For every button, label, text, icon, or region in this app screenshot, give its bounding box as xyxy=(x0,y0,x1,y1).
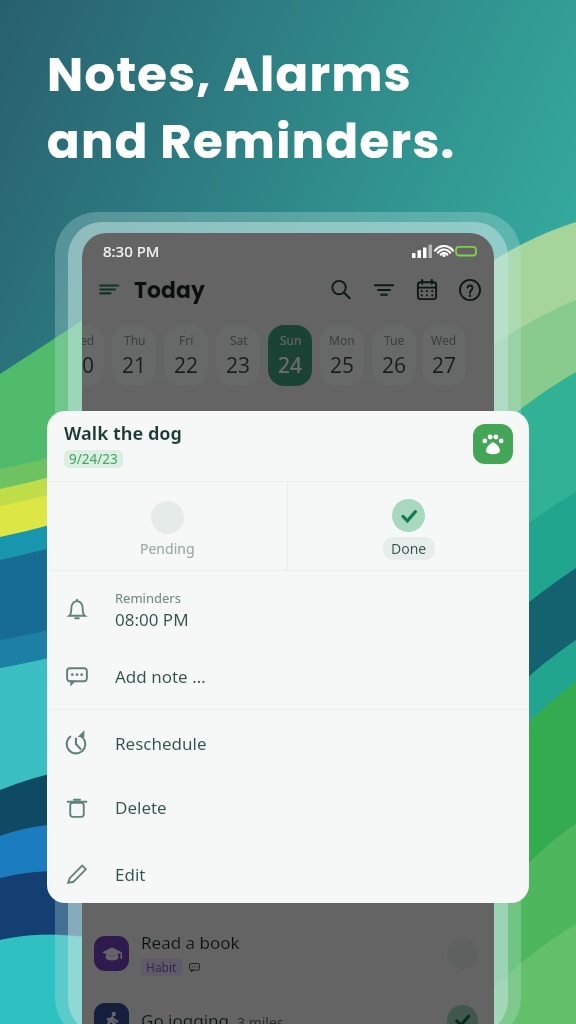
button[interactable]: Mon xyxy=(320,325,364,386)
button[interactable]: Wed xyxy=(422,325,466,386)
staticText: 9/24/23 xyxy=(69,450,118,468)
button[interactable]: Edit xyxy=(47,842,529,903)
staticText: Reminders xyxy=(115,589,181,607)
staticText: 25 xyxy=(330,351,355,380)
staticText: 8:30 PM xyxy=(103,241,160,261)
button[interactable]: Wed xyxy=(82,325,104,386)
staticText: Done xyxy=(391,539,427,558)
staticText: 3 miles xyxy=(237,1013,284,1024)
staticText: Tue xyxy=(384,332,405,348)
button[interactable]: Filter xyxy=(372,278,396,302)
staticText: Sun xyxy=(280,332,302,348)
staticText: 20 xyxy=(82,351,95,380)
staticText: Go jogging xyxy=(141,1009,230,1024)
button[interactable]: Help xyxy=(458,278,482,302)
staticText: Edit xyxy=(115,863,146,886)
button[interactable]: Done xyxy=(288,482,529,570)
button[interactable]: Pending xyxy=(47,482,287,570)
button[interactable]: Search xyxy=(329,278,353,302)
staticText: 23 xyxy=(226,351,251,380)
staticText: 26 xyxy=(382,351,407,380)
staticText: Mon xyxy=(329,332,355,348)
staticText: 21 xyxy=(122,351,147,380)
staticText: Add note … xyxy=(115,665,206,688)
staticText: 22 xyxy=(174,351,199,380)
staticText: Sat xyxy=(230,332,248,348)
staticText: Thu xyxy=(124,332,146,348)
staticText: 08:00 PM xyxy=(115,608,189,631)
staticText: Habit xyxy=(146,959,177,975)
staticText: Wed xyxy=(82,332,95,348)
button[interactable]: Sat xyxy=(216,325,260,386)
staticText: Reschedule xyxy=(115,732,207,755)
button[interactable]: Reschedule xyxy=(47,711,529,775)
button[interactable]: Delete xyxy=(47,775,529,840)
staticText: Read a book xyxy=(141,931,240,954)
button[interactable]: Read a book xyxy=(82,920,494,987)
button[interactable]: Pets category xyxy=(473,424,513,464)
staticText: Notes, Alarms xyxy=(47,41,412,108)
button[interactable]: Sun xyxy=(268,325,312,386)
staticText: 27 xyxy=(432,351,457,380)
staticText: Fri xyxy=(179,332,194,348)
staticText: and Reminders. xyxy=(47,108,456,175)
button[interactable]: Thu xyxy=(112,325,156,386)
button[interactable]: Calendar xyxy=(415,278,439,302)
staticText: Walk the dog xyxy=(64,421,182,446)
button[interactable]: Toggle done xyxy=(447,1005,478,1024)
button[interactable]: Go jogging xyxy=(82,987,494,1024)
button[interactable]: Tue xyxy=(372,325,416,386)
button[interactable]: Menu xyxy=(96,276,124,304)
staticText: Delete xyxy=(115,796,167,819)
staticText: 24 xyxy=(278,351,303,380)
button[interactable]: Fri xyxy=(164,325,208,386)
staticText: Pending xyxy=(140,539,195,558)
staticText: Wed xyxy=(431,332,457,348)
staticText: Today xyxy=(134,275,205,306)
button[interactable]: Add note … xyxy=(47,644,529,708)
button[interactable]: Reminders xyxy=(47,572,529,647)
